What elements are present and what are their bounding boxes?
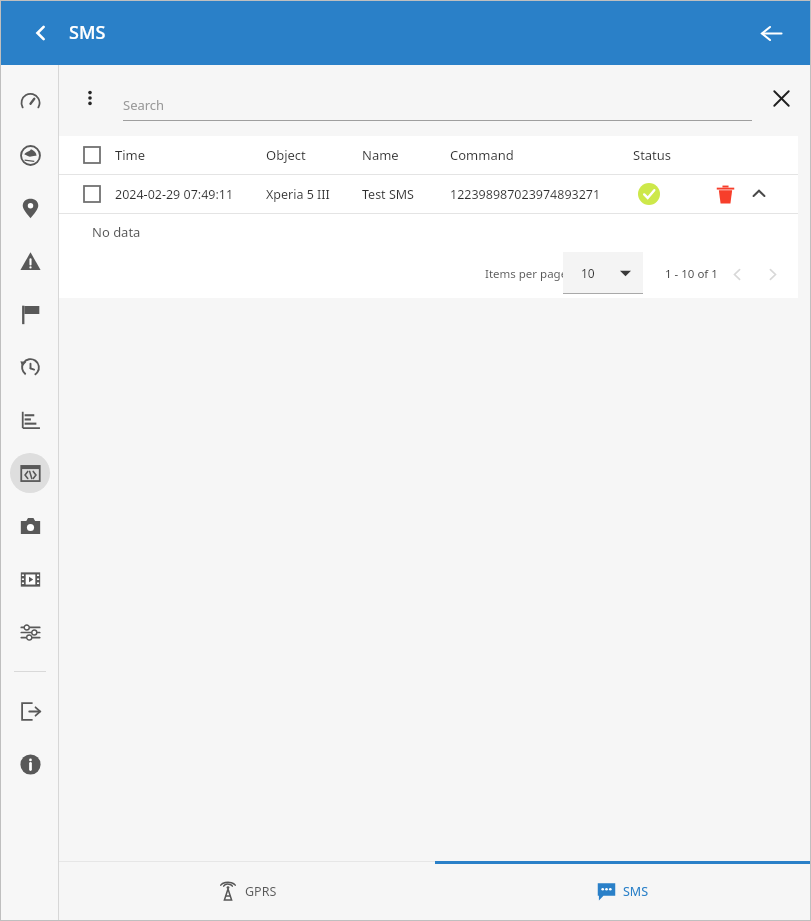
button[interactable]: Dashboard [0, 75, 59, 128]
staticText: Time [115, 146, 146, 164]
button[interactable]: SMS [435, 861, 811, 921]
staticText: SMS [69, 20, 106, 45]
button[interactable]: Search [123, 90, 752, 120]
button[interactable]: Geofences [0, 287, 59, 340]
button[interactable]: Next page [756, 250, 788, 298]
button[interactable]: Navigate back [751, 13, 791, 53]
staticText: Items per page [485, 266, 568, 282]
button[interactable]: Select row [73, 175, 111, 213]
button[interactable]: Select all rows [73, 136, 111, 174]
button[interactable]: History [0, 340, 59, 393]
staticText: 10 [581, 265, 595, 281]
button[interactable]: Delete [707, 175, 743, 213]
staticText: 122398987023974893271 [450, 186, 601, 203]
button[interactable]: More options [73, 81, 107, 115]
staticText: Command [450, 146, 514, 164]
staticText: No data [92, 223, 141, 241]
staticText: Test SMS [362, 186, 414, 203]
button[interactable]: Previous page [721, 250, 753, 298]
button[interactable]: Settings [0, 605, 59, 658]
button[interactable]: Alerts [0, 234, 59, 287]
button[interactable]: Clear search [764, 81, 798, 115]
button[interactable]: Commands [0, 446, 59, 499]
button[interactable]: Back [24, 16, 58, 50]
button[interactable]: Places [0, 181, 59, 234]
button[interactable]: Video [0, 552, 59, 605]
staticText: SMS [623, 883, 649, 900]
button[interactable]: Reports [0, 393, 59, 446]
button[interactable]: About [0, 737, 59, 790]
button[interactable]: Items per page [563, 252, 643, 294]
staticText: Object [266, 146, 306, 164]
staticText: Search [123, 96, 165, 114]
staticText: Name [362, 146, 399, 164]
button[interactable]: Select row [59, 175, 798, 213]
button[interactable]: Log out [0, 684, 59, 737]
button[interactable]: Collapse row [741, 175, 777, 213]
staticText: Xperia 5 III [266, 186, 330, 203]
staticText: 1 - 10 of 1 [665, 266, 718, 282]
staticText: GPRS [245, 883, 277, 900]
button[interactable]: GPRS [59, 861, 435, 921]
button[interactable]: Map [0, 128, 59, 181]
staticText: 2024-02-29 07:49:11 [115, 186, 234, 203]
staticText: Status [633, 146, 672, 164]
button[interactable]: Photos [0, 499, 59, 552]
